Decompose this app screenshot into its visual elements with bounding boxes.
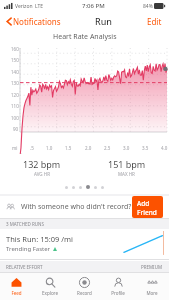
staticText: 130 xyxy=(11,80,19,86)
staticText: Run xyxy=(95,15,112,27)
staticText: 3.5 xyxy=(142,145,149,151)
staticText: This Run: 15:09 /mi xyxy=(6,234,74,244)
staticText: Verizon xyxy=(15,3,33,10)
staticText: 4.0 xyxy=(161,145,168,151)
staticText: 84% xyxy=(143,3,153,10)
button[interactable]: This Run: 15:09 /mi xyxy=(0,229,169,259)
staticText: 2.0 xyxy=(85,145,92,151)
staticText: 110 xyxy=(11,103,19,109)
staticText: MAX HR xyxy=(118,171,135,177)
staticText: 100 xyxy=(11,115,19,121)
staticText: Add Friend xyxy=(137,199,158,215)
button[interactable]: Explore xyxy=(33,273,67,300)
staticText: 3 MATCHED RUNS xyxy=(6,221,44,227)
button[interactable]: Edit xyxy=(144,14,165,29)
staticText: Feed xyxy=(11,290,22,296)
staticText: 2.5 xyxy=(104,145,111,151)
staticText: 160 xyxy=(11,46,19,52)
staticText: 3.0 xyxy=(123,145,130,151)
staticText: 120 xyxy=(11,92,19,98)
staticText: PREMIUM xyxy=(141,264,163,270)
staticText: AVG HR xyxy=(34,171,50,177)
button[interactable]: Profile xyxy=(101,273,135,300)
button[interactable]: Feed xyxy=(0,273,33,300)
staticText: 151 bpm xyxy=(108,158,146,170)
button[interactable]: Record xyxy=(67,273,101,300)
button[interactable]: More xyxy=(135,273,169,300)
button[interactable]: Add Friend xyxy=(132,196,163,218)
staticText: Profile xyxy=(111,290,125,296)
staticText: Notifications xyxy=(13,16,61,27)
staticText: Explore xyxy=(42,290,58,296)
staticText: 1.5 xyxy=(65,145,72,151)
staticText: Edit xyxy=(147,16,162,27)
staticText: More xyxy=(146,290,158,296)
staticText: 90 xyxy=(13,126,19,132)
staticText: Trending Faster xyxy=(6,245,51,253)
button[interactable]: Notifications xyxy=(4,14,63,29)
staticText: 7:06 PM xyxy=(82,2,105,10)
staticText: Heart Rate Analysis xyxy=(53,32,117,42)
staticText: RELATIVE EFFORT xyxy=(6,264,43,270)
staticText: With someone who didn't record? xyxy=(21,202,132,212)
staticText: 1.0 xyxy=(46,145,53,151)
staticText: LTE xyxy=(35,3,44,10)
staticText: Record xyxy=(77,290,92,296)
staticText: mi xyxy=(12,145,18,151)
staticText: .5 xyxy=(30,145,34,151)
staticText: 132 bpm xyxy=(23,158,61,170)
other: Friends xyxy=(6,203,16,211)
staticText: 140 xyxy=(11,69,19,75)
staticText: 150 xyxy=(11,57,19,63)
